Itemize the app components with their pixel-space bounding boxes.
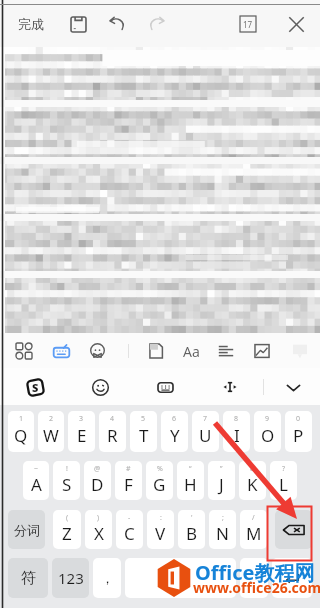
staticText: M — [246, 522, 262, 545]
staticText: ( — [66, 513, 69, 523]
button[interactable]: 分词 — [8, 510, 45, 549]
staticText: V — [155, 522, 166, 545]
staticText: 17 — [243, 19, 253, 30]
staticText: ! — [66, 464, 68, 474]
staticText: 3 — [79, 414, 84, 424]
button[interactable]: / — [240, 510, 267, 549]
staticText: 0 — [296, 414, 301, 424]
button[interactable]: Emoji — [86, 340, 108, 362]
button[interactable]: Backspace — [275, 510, 312, 549]
button[interactable]: 符 — [8, 558, 48, 598]
button[interactable]: Period — [240, 558, 268, 598]
button[interactable]: 1 — [8, 411, 34, 452]
button[interactable]: 完成 — [12, 8, 50, 40]
staticText: 9 — [265, 414, 270, 424]
button[interactable]: Hide keyboard — [282, 376, 304, 398]
button[interactable]: 6 — [161, 411, 188, 452]
button[interactable]: Emoji — [89, 376, 111, 398]
button[interactable]: ~ — [23, 461, 49, 500]
staticText: www.office26.com — [193, 578, 320, 597]
staticText: ” — [220, 464, 223, 474]
staticText: ) — [97, 513, 100, 523]
staticText: Q — [14, 424, 28, 447]
staticText: I — [234, 424, 240, 447]
staticText: F — [124, 473, 133, 496]
staticText: D — [91, 473, 104, 496]
button[interactable]: Redo — [141, 9, 171, 39]
button[interactable]: # — [115, 461, 142, 500]
button[interactable]: 0 — [285, 411, 312, 452]
button[interactable]: Insert picture — [251, 340, 273, 362]
button[interactable]: ? — [270, 461, 297, 500]
button[interactable]: Paragraph — [215, 340, 237, 362]
button[interactable]: “ — [177, 461, 204, 500]
button[interactable]: ( — [53, 510, 81, 549]
button[interactable]: Undo — [102, 9, 132, 39]
staticText: S — [32, 380, 39, 395]
button[interactable]: ' — [178, 510, 205, 549]
staticText: G — [153, 473, 166, 496]
staticText: 5 — [141, 414, 146, 424]
button[interactable]: 9 — [254, 411, 281, 452]
staticText: : — [160, 513, 162, 523]
button[interactable]: Keyboard layout — [154, 376, 176, 398]
staticText: K — [247, 473, 258, 496]
button[interactable]: Aa — [179, 339, 203, 363]
staticText: W — [43, 424, 59, 447]
button[interactable]: Move cursor — [219, 376, 241, 398]
staticText: # — [126, 464, 131, 474]
button[interactable]: Page setup — [145, 340, 167, 362]
button[interactable]: ” — [208, 461, 235, 500]
button[interactable]: Close — [281, 9, 311, 39]
button[interactable]: 123 — [52, 558, 89, 598]
button[interactable]: Page count — [233, 9, 263, 39]
staticText: 4 — [110, 414, 115, 424]
staticText: R — [107, 424, 118, 447]
button[interactable]: 4 — [99, 411, 126, 452]
staticText: B — [186, 522, 198, 545]
button[interactable]: - — [116, 510, 143, 549]
button[interactable]: @ — [84, 461, 111, 500]
button[interactable]: 5 — [130, 411, 157, 452]
button[interactable]: Sogou input — [24, 376, 46, 398]
button[interactable]: Enter — [272, 558, 312, 598]
button[interactable]: 8 — [223, 411, 250, 452]
staticText: S — [62, 473, 72, 496]
staticText: N — [216, 522, 229, 545]
button[interactable]: Comma — [93, 558, 121, 598]
staticText: E — [77, 424, 87, 447]
staticText: 分词 — [14, 522, 40, 538]
staticText: & — [250, 464, 256, 474]
staticText: “ — [189, 464, 192, 474]
staticText: U — [199, 424, 212, 447]
button[interactable]: 3 — [68, 411, 95, 452]
staticText: 123 — [58, 568, 84, 588]
staticText: 1 — [19, 414, 24, 424]
staticText: ? — [282, 464, 286, 474]
button[interactable]: 7 — [192, 411, 219, 452]
button[interactable]: ) — [85, 510, 112, 549]
staticText: C — [124, 522, 135, 545]
staticText: 6 — [172, 414, 177, 424]
staticText: Y — [170, 424, 180, 447]
staticText: Z — [62, 522, 72, 545]
button[interactable]: Apps — [13, 340, 35, 362]
button[interactable]: Input method — [50, 340, 72, 362]
button[interactable]: Space — [125, 558, 236, 598]
staticText: L — [279, 473, 288, 496]
button[interactable]: & — [239, 461, 266, 500]
button[interactable]: ; — [209, 510, 236, 549]
staticText: H — [184, 473, 197, 496]
button[interactable]: ! — [53, 461, 80, 500]
staticText: A — [31, 473, 42, 496]
staticText: Office教程网 — [195, 559, 315, 586]
staticText: 7 — [203, 414, 208, 424]
button[interactable]: % — [146, 461, 173, 500]
staticText: / — [252, 513, 255, 523]
button[interactable]: More — [289, 340, 311, 362]
button[interactable]: Save — [63, 9, 93, 39]
button[interactable]: 2 — [38, 411, 64, 452]
staticText: 2 — [49, 414, 54, 424]
button[interactable]: : — [147, 510, 174, 549]
staticText: ' — [191, 513, 193, 523]
